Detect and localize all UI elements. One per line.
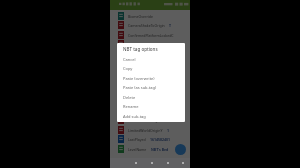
button[interactable]: LANBroadcastIntent [110, 87, 190, 97]
button[interactable]: GameType [110, 49, 190, 59]
staticText: ConfirmedPlatformLockedC [128, 33, 174, 38]
staticText: LastPlayed [128, 137, 146, 142]
staticText: Delete [123, 95, 136, 100]
other: Status bar [110, 0, 190, 10]
button[interactable]: LevelName [110, 144, 190, 154]
button[interactable]: LightningLevel [110, 106, 190, 116]
button[interactable]: Delete [117, 92, 185, 102]
button[interactable]: Paste (as sub-tag) [117, 82, 185, 92]
button[interactable]: CameraShakeToOrigin [110, 20, 190, 30]
button[interactable]: LANBroadcast [110, 77, 190, 87]
button[interactable]: Add tag [175, 144, 186, 155]
staticText: T [169, 23, 172, 28]
staticText: 1 [167, 118, 170, 123]
staticText: ForceGameType [128, 42, 155, 47]
staticText: LevelName [128, 147, 147, 152]
staticText: LimitedWorldOriginX [128, 118, 163, 123]
staticText: NBT tag options [123, 46, 158, 52]
staticText: Paste (overwrite) [123, 76, 155, 81]
button[interactable]: Menu [176, 158, 190, 168]
staticText: NBT's Bed [151, 147, 169, 152]
button[interactable]: Back [128, 158, 144, 168]
staticText: Cancel [123, 57, 136, 62]
staticText: LimitedWorldOriginY [128, 128, 163, 133]
button[interactable]: Add sub-tag [117, 111, 185, 121]
button[interactable]: InventoryVersion [110, 68, 190, 78]
button[interactable]: Rename [117, 101, 185, 111]
staticText: Paste (as sub-tag) [123, 85, 157, 90]
button[interactable]: ConfirmedPlatformLockedC [110, 30, 190, 40]
staticText: CameraShakeToOrigin [128, 23, 165, 28]
button[interactable]: Copy [117, 63, 185, 73]
button[interactable]: LastOpenedWithVersion [110, 96, 190, 106]
staticText: BiomeOverride [128, 14, 153, 19]
button[interactable]: LastPlayed [110, 134, 190, 144]
button[interactable]: BiomeOverride [110, 11, 190, 21]
button[interactable]: LimitedWorldOriginY [110, 125, 190, 135]
button[interactable]: Recents [160, 158, 176, 168]
staticText: Copy [123, 66, 133, 71]
button[interactable]: ForceGameType [110, 39, 190, 49]
button[interactable]: Generator [110, 58, 190, 68]
staticText: Rename [123, 104, 139, 109]
staticText: 1 [167, 128, 170, 133]
staticText: 1614582401 [150, 137, 171, 142]
staticText: Add sub-tag [123, 114, 146, 119]
button[interactable]: Paste (overwrite) [117, 73, 185, 83]
button[interactable]: LimitedWorldOriginX [110, 115, 190, 125]
button[interactable]: Cancel [117, 54, 185, 64]
button[interactable]: Home [144, 158, 160, 168]
